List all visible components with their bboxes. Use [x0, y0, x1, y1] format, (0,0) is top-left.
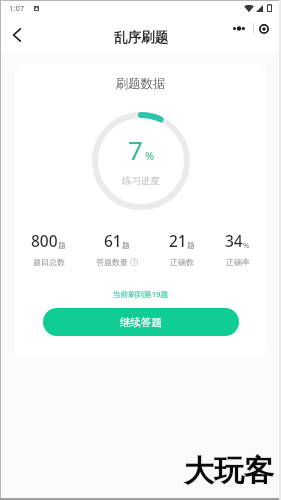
staticText: 题目总数: [33, 257, 65, 267]
staticText: 正确数: [170, 257, 194, 267]
button[interactable]: More options: [225, 20, 253, 37]
staticText: 题: [187, 241, 195, 250]
staticText: 乱序刷题: [114, 29, 168, 46]
staticText: 题: [58, 241, 66, 250]
staticText: 继续答题: [120, 316, 162, 329]
staticText: 1:07: [9, 3, 25, 13]
staticText: %: [145, 148, 155, 163]
staticText: 21: [169, 230, 187, 251]
staticText: %: [243, 240, 250, 250]
staticText: 练习进度: [122, 175, 160, 187]
staticText: 61: [104, 230, 122, 251]
button[interactable]: Close: [254, 20, 274, 37]
button[interactable]: Back: [0, 18, 33, 52]
staticText: 正确率: [226, 257, 250, 267]
staticText: 刷题数据: [15, 76, 266, 92]
staticText: 答题数量: [96, 257, 128, 267]
staticText: 大玩客: [184, 452, 274, 490]
staticText: 当前刷到第19题: [15, 289, 266, 300]
staticText: 题: [122, 241, 130, 250]
staticText: 800: [31, 230, 58, 251]
staticText: ?: [133, 258, 136, 266]
staticText: 7: [128, 132, 143, 167]
button[interactable]: 继续答题: [43, 308, 239, 336]
staticText: 34: [225, 230, 243, 251]
